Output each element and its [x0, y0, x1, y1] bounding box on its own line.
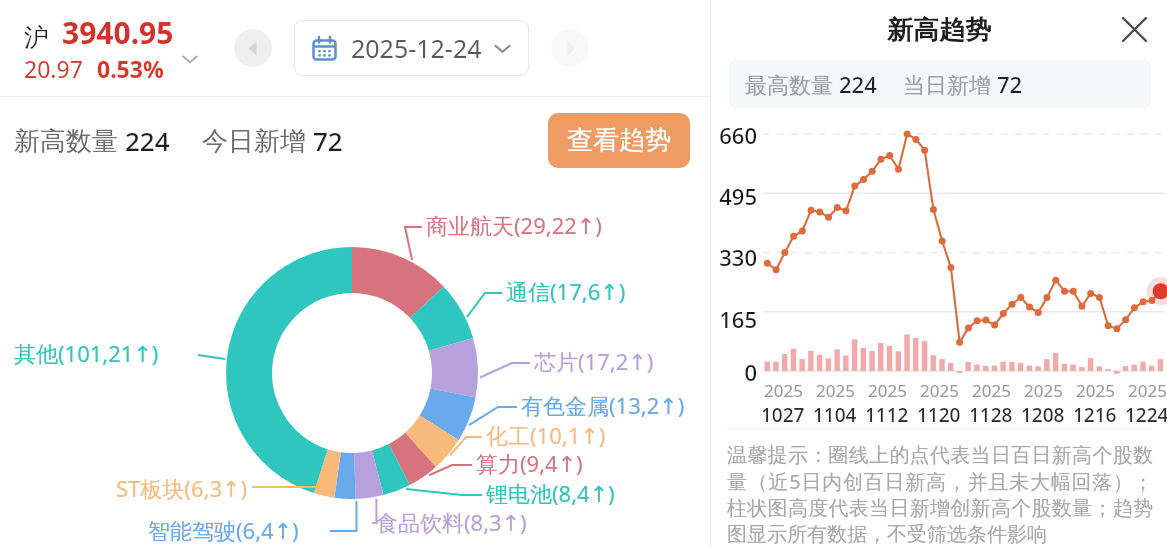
- staticText: 最高数量: [745, 69, 839, 99]
- staticText: 0: [713, 357, 757, 387]
- staticText: 温馨提示：圈线上的点代表当日百日新高个股数量（近5日内创百日新高，并且未大幅回落…: [727, 443, 1153, 547]
- staticText: 20.97: [24, 53, 83, 84]
- staticText: 通信(17,6↑): [506, 276, 626, 306]
- staticText: 1216: [1073, 402, 1117, 428]
- staticText: 算力(9,4↑): [476, 448, 583, 478]
- staticText: 660: [713, 120, 757, 150]
- staticText: 其他(101,21↑): [14, 338, 159, 368]
- staticText: 1027: [761, 402, 805, 428]
- staticText: 2025: [1076, 379, 1115, 402]
- staticText: 0.53%: [97, 53, 164, 84]
- button[interactable]: 查看趋势: [548, 113, 690, 168]
- staticText: 2025: [868, 379, 907, 402]
- staticText: 2025: [764, 379, 803, 402]
- staticText: 1104: [813, 402, 857, 428]
- staticText: 新高趋势: [887, 14, 991, 47]
- staticText: 新高数量: [14, 122, 125, 158]
- staticText: 当日新增: [903, 69, 997, 99]
- button[interactable]: 下一日: [551, 29, 589, 67]
- staticText: 食品饮料(8,3↑): [376, 507, 527, 537]
- staticText: 芯片(17,2↑): [534, 346, 654, 376]
- staticText: 1128: [969, 402, 1013, 428]
- staticText: 有色金属(13,2↑): [521, 390, 685, 420]
- button[interactable]: 2025-12-24: [294, 20, 529, 76]
- staticText: 化工(10,1↑): [486, 420, 606, 450]
- staticText: 1208: [1021, 402, 1065, 428]
- button[interactable]: 上一日: [234, 29, 272, 67]
- staticText: 智能驾驶(6,4↑): [148, 515, 299, 545]
- staticText: 2025: [816, 379, 855, 402]
- staticText: 72: [997, 69, 1023, 99]
- staticText: 沪: [24, 22, 49, 53]
- staticText: 查看趋势: [567, 124, 671, 157]
- staticText: 495: [713, 181, 757, 211]
- staticText: 2025: [972, 379, 1011, 402]
- staticText: 330: [713, 242, 757, 272]
- staticText: 1112: [865, 402, 909, 428]
- staticText: 2025: [1024, 379, 1063, 402]
- staticText: 3940.95: [62, 12, 174, 53]
- button[interactable]: 展开指数: [176, 45, 204, 73]
- staticText: 165: [713, 304, 757, 334]
- staticText: ST板块(6,3↑): [116, 473, 248, 503]
- staticText: 1224: [1125, 402, 1167, 428]
- staticText: 2025: [920, 379, 959, 402]
- staticText: 锂电池(8,4↑): [486, 478, 615, 508]
- staticText: 224: [125, 123, 170, 158]
- staticText: 商业航天(29,22↑): [426, 210, 602, 240]
- staticText: 今日新增: [202, 122, 313, 158]
- button[interactable]: 关闭: [1111, 6, 1157, 52]
- staticText: 2025-12-24: [351, 31, 482, 65]
- staticText: 224: [839, 69, 877, 99]
- staticText: 2025: [1128, 379, 1167, 402]
- staticText: 72: [313, 123, 343, 158]
- staticText: 1120: [917, 402, 961, 428]
